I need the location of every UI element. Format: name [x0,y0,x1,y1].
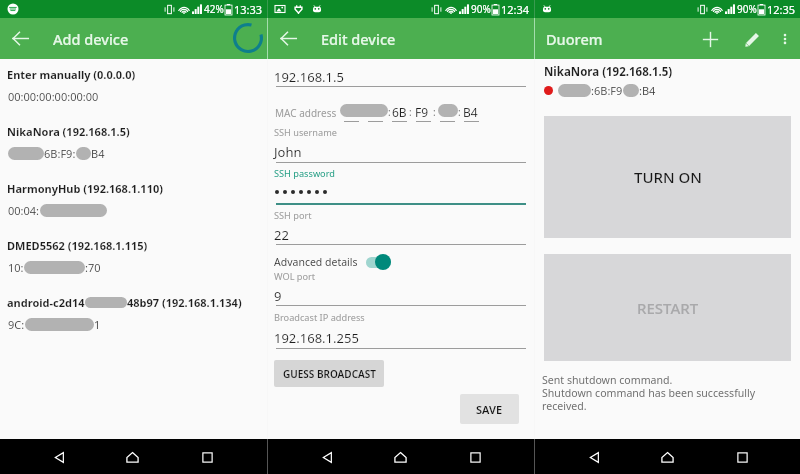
staticText: 10: [8,260,24,274]
staticText: 90% [737,2,757,16]
button[interactable]: Home [390,447,410,467]
button[interactable]: Enter manually (0.0.0.0) [0,67,267,124]
staticText: SAVE [476,402,503,417]
staticText: Edit device [321,29,396,49]
staticText: 90% [471,2,491,16]
button[interactable]: NikaNora (192.168.1.5) [0,124,267,181]
staticText: :6B:F9 [591,83,623,97]
staticText: WOL port [274,270,316,283]
button[interactable]: Add device [696,25,724,53]
button[interactable]: GUESS BROADCAST [274,360,384,387]
staticText: B4 [463,104,478,120]
staticText: F9 [415,104,429,120]
staticText: RESTART [637,298,699,318]
staticText: : [409,105,412,119]
staticText: SSH username [274,126,337,139]
button[interactable]: TURN ON [544,116,791,238]
button[interactable]: Home [122,447,142,467]
button[interactable]: More options [771,25,799,53]
staticText: 00:00:00:00:00:00 [8,89,99,103]
button[interactable]: Recents [465,447,485,467]
button[interactable]: Back [584,447,604,467]
staticText: Enter manually (0.0.0.0) [7,67,136,82]
button[interactable]: SAVE [460,394,519,424]
staticText: 9C: [8,317,25,331]
staticText: John [274,143,302,161]
staticText: MAC address [275,106,337,120]
staticText: 6B:F9: [44,146,76,160]
staticText: : [433,105,436,119]
staticText: android-c2d14 [7,295,85,310]
staticText: 42% [204,2,224,16]
staticText: Add device [53,29,129,49]
staticText: 22 [274,226,289,244]
staticText: Advanced details [274,255,358,269]
staticText: : [388,105,391,119]
button[interactable]: Navigate up [277,27,300,50]
staticText: 00:04: [8,203,40,217]
button[interactable]: Navigate up [9,27,32,50]
button[interactable]: Home [657,447,677,467]
staticText: HarmonyHub (192.168.1.110) [7,181,163,196]
staticText: 12:34 [501,2,530,17]
staticText: :B4 [639,83,656,97]
button[interactable]: Recents [197,447,217,467]
staticText: 13:33 [234,2,263,17]
staticText: 9 [274,287,282,305]
staticText: TURN ON [634,167,702,187]
button[interactable]: Edit [738,25,766,53]
staticText: Broadcast IP address [274,311,365,324]
staticText: 6B [392,104,407,120]
staticText: 1 [94,317,101,331]
button[interactable]: android-c2d14 [0,295,267,352]
button[interactable]: HarmonyHub (192.168.1.110) [0,181,267,238]
staticText: 48b97 (192.168.1.134) [127,295,242,310]
staticText: 192.168.1.5 [274,68,344,86]
button[interactable]: Advanced details [268,251,534,273]
staticText: DMED5562 (192.168.1.115) [7,238,148,253]
button[interactable]: RESTART [544,254,791,361]
button[interactable]: Recents [732,447,752,467]
staticText: GUESS BROADCAST [283,367,376,381]
button[interactable]: DMED5562 (192.168.1.115) [0,238,267,295]
staticText: NikaNora (192.168.1.5) [7,124,130,139]
button[interactable]: Back [317,447,337,467]
staticText: B4 [91,146,105,160]
staticText: SSH password [274,167,335,180]
staticText: 12:35 [767,2,796,17]
staticText: :70 [85,260,101,274]
staticText: Duorem [546,29,603,49]
staticText: NikaNora (192.168.1.5) [544,64,673,80]
staticText: 192.168.1.255 [274,329,359,347]
staticText: : [458,105,461,119]
button[interactable]: Back [49,447,69,467]
staticText: SSH port [274,209,312,222]
staticText: Sent shutdown command. Shutdown command … [542,373,756,413]
